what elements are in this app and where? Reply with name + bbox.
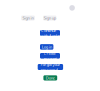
- button[interactable]: Sign up: [43, 15, 56, 20]
- staticText: Sign in: [22, 15, 33, 21]
- staticText: Done: [46, 75, 55, 80]
- button[interactable]: Continue with Apple: [40, 30, 60, 36]
- staticText: Create account: [43, 50, 56, 61]
- button[interactable]: Log in: [40, 44, 53, 50]
- button[interactable]: Done: [43, 75, 57, 80]
- staticText: Continue with Apple: [41, 28, 59, 38]
- staticText: Sign up: [44, 15, 56, 21]
- staticText: Forgot your password: [40, 62, 60, 72]
- staticText: Log in: [42, 44, 52, 49]
- button[interactable]: Create account: [40, 53, 60, 59]
- button[interactable]: Sign in: [21, 15, 35, 20]
- button[interactable]: Forgot your password: [38, 64, 63, 70]
- button[interactable]: Account: [69, 5, 75, 11]
